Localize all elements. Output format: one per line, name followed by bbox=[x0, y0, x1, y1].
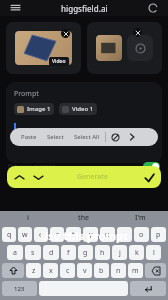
staticText: Paste bbox=[21, 133, 37, 141]
staticText: l bbox=[153, 248, 155, 258]
staticText: f bbox=[67, 248, 70, 258]
staticText: a bbox=[13, 248, 17, 258]
staticText: v bbox=[83, 266, 87, 276]
staticText: Enhance prompt bbox=[8, 162, 55, 170]
button[interactable]: l bbox=[146, 245, 161, 260]
button[interactable]: More bbox=[124, 128, 140, 146]
button[interactable]: Previous bbox=[15, 173, 24, 182]
button[interactable]: v bbox=[77, 263, 92, 278]
button[interactable]: w bbox=[18, 227, 32, 242]
staticText: q bbox=[7, 230, 12, 240]
button[interactable]: Video 1 bbox=[59, 103, 97, 115]
button[interactable] bbox=[145, 263, 166, 278]
staticText: o bbox=[139, 230, 144, 240]
staticText: b bbox=[99, 266, 104, 276]
button[interactable]: Remove bbox=[61, 29, 70, 38]
staticText: Select bbox=[47, 133, 64, 141]
staticText: k bbox=[135, 248, 139, 258]
button[interactable]: b bbox=[94, 263, 109, 278]
button[interactable]: Toggle bbox=[143, 162, 160, 171]
button[interactable]: Return bbox=[130, 281, 166, 296]
button[interactable]: Paste bbox=[16, 130, 42, 144]
staticText: Video 1 bbox=[72, 105, 94, 113]
staticText: g bbox=[83, 248, 88, 258]
button[interactable]: Formatting bbox=[106, 128, 124, 146]
staticText: j bbox=[119, 248, 121, 258]
button[interactable]: Select All bbox=[69, 130, 105, 144]
staticText: t bbox=[72, 230, 75, 240]
staticText: the bbox=[78, 213, 90, 223]
button[interactable]: f bbox=[61, 245, 76, 260]
button[interactable]: n bbox=[111, 263, 126, 278]
staticText: Use this prompt bbox=[40, 228, 128, 243]
staticText: y bbox=[89, 230, 93, 240]
button[interactable]: k bbox=[129, 245, 144, 260]
button[interactable]: Done bbox=[144, 172, 155, 183]
staticText: r bbox=[56, 230, 59, 240]
button[interactable]: Add media bbox=[87, 22, 162, 74]
button[interactable]: 123 bbox=[2, 281, 37, 296]
button[interactable]: Remove bbox=[133, 28, 142, 37]
button[interactable]: y bbox=[83, 227, 98, 242]
staticText: p bbox=[156, 230, 161, 240]
staticText: i bbox=[27, 213, 29, 223]
staticText: h bbox=[100, 248, 105, 258]
staticText: Image 1 bbox=[27, 105, 51, 113]
button[interactable]: e bbox=[34, 227, 48, 242]
button[interactable]: g bbox=[78, 245, 93, 260]
button[interactable]: Select bbox=[42, 130, 69, 144]
button[interactable]: q bbox=[2, 227, 16, 242]
staticText: m bbox=[132, 266, 139, 276]
button[interactable]: Reload bbox=[146, 1, 160, 15]
staticText: Generate bbox=[77, 172, 109, 182]
staticText: e bbox=[39, 230, 43, 240]
button[interactable]: Previous bbox=[7, 166, 161, 188]
staticText: w bbox=[22, 230, 28, 240]
staticText: Video bbox=[52, 58, 66, 65]
button[interactable]: c bbox=[60, 263, 75, 278]
button[interactable]: u bbox=[100, 227, 115, 242]
button[interactable]: r bbox=[50, 227, 64, 242]
button[interactable]: Add media bbox=[127, 35, 153, 61]
button[interactable]: a bbox=[7, 245, 23, 260]
staticText: i bbox=[124, 230, 126, 240]
button[interactable]: Image 1 bbox=[14, 103, 54, 115]
button[interactable]: p bbox=[151, 227, 166, 242]
button[interactable]: m bbox=[128, 263, 143, 278]
staticText: Prompt bbox=[14, 89, 40, 99]
staticText: u bbox=[105, 230, 110, 240]
button[interactable]: Space bbox=[39, 281, 128, 296]
button[interactable]: s bbox=[25, 245, 41, 260]
button[interactable]: z bbox=[26, 263, 41, 278]
button[interactable]: o bbox=[134, 227, 149, 242]
button[interactable]: I'm bbox=[112, 211, 168, 225]
staticText: Select All bbox=[74, 133, 100, 141]
button[interactable]: t bbox=[66, 227, 81, 242]
staticText: 123 bbox=[14, 285, 25, 293]
button[interactable]: j bbox=[112, 245, 127, 260]
button[interactable]: x bbox=[43, 263, 58, 278]
button[interactable]: Menu bbox=[8, 1, 22, 15]
button[interactable]: Next bbox=[34, 173, 43, 182]
button[interactable]: i bbox=[117, 227, 132, 242]
staticText: z bbox=[32, 266, 36, 276]
button[interactable]: i bbox=[0, 211, 56, 225]
button[interactable]: Video bbox=[6, 22, 81, 74]
button[interactable]: the bbox=[56, 211, 112, 225]
staticText: higgsfield.ai bbox=[61, 3, 108, 14]
staticText: s bbox=[31, 248, 35, 258]
staticText: x bbox=[49, 266, 53, 276]
button[interactable] bbox=[2, 263, 24, 278]
staticText: I'm bbox=[135, 213, 146, 223]
staticText: c bbox=[66, 266, 70, 276]
button[interactable]: d bbox=[43, 245, 59, 260]
button[interactable]: h bbox=[95, 245, 110, 260]
staticText: d bbox=[49, 248, 54, 258]
staticText: n bbox=[116, 266, 121, 276]
